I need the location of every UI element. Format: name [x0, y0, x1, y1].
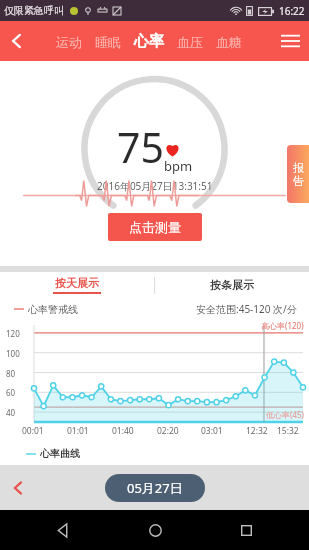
- staticText: 02:20: [157, 425, 179, 437]
- staticText: 01:40: [112, 425, 134, 437]
- staticText: 15:32: [277, 425, 299, 437]
- button[interactable]: 05月27日: [105, 474, 205, 502]
- staticText: 安全范围:45-120 次/分: [196, 302, 297, 316]
- button[interactable]: Home: [140, 515, 170, 545]
- staticText: 心率曲线: [40, 447, 80, 460]
- staticText: 00:01: [22, 425, 44, 437]
- staticText: 80: [6, 368, 16, 379]
- staticText: 05月27日: [127, 479, 183, 497]
- staticText: 03:01: [201, 425, 223, 437]
- staticText: 75: [117, 119, 164, 175]
- button[interactable]: Previous day: [0, 470, 36, 506]
- staticText: 点击测量: [129, 219, 181, 235]
- staticText: 60: [6, 387, 16, 398]
- staticText: 16:22: [279, 4, 305, 18]
- button[interactable]: 点击测量: [108, 213, 202, 241]
- staticText: 01:01: [67, 425, 89, 437]
- staticText: bpm: [164, 157, 193, 175]
- staticText: 仅限紧急呼叫: [4, 4, 64, 17]
- button[interactable]: 按天展示: [0, 272, 154, 298]
- staticText: 报 告: [293, 161, 304, 188]
- staticText: 120: [6, 328, 20, 339]
- staticText: 血糖: [216, 34, 242, 50]
- staticText: 按天展示: [55, 276, 99, 290]
- button[interactable]: 血压: [176, 30, 204, 54]
- staticText: 40: [6, 407, 16, 418]
- button[interactable]: Back: [48, 515, 78, 545]
- staticText: 高心率(120): [261, 320, 304, 331]
- staticText: 运动: [56, 34, 82, 50]
- button[interactable]: Recents: [231, 515, 261, 545]
- button[interactable]: 按条展示: [155, 272, 309, 298]
- staticText: 低心率(45): [266, 409, 304, 420]
- button[interactable]: 心率: [133, 28, 165, 55]
- staticText: 12:32: [246, 425, 268, 437]
- button[interactable]: 报 告: [287, 145, 309, 203]
- staticText: 血压: [177, 34, 203, 50]
- staticText: 2016年05月27日13:31:51: [97, 179, 213, 193]
- staticText: 按条展示: [210, 278, 254, 292]
- button[interactable]: 血糖: [215, 30, 243, 54]
- staticText: 心率警戒线: [28, 303, 78, 316]
- button[interactable]: Back: [0, 24, 34, 58]
- staticText: 心率: [134, 32, 164, 51]
- staticText: 100: [6, 348, 20, 359]
- button[interactable]: 睡眠: [94, 30, 122, 54]
- button[interactable]: Menu: [271, 22, 309, 60]
- staticText: 睡眠: [95, 34, 121, 50]
- button[interactable]: 运动: [55, 30, 83, 54]
